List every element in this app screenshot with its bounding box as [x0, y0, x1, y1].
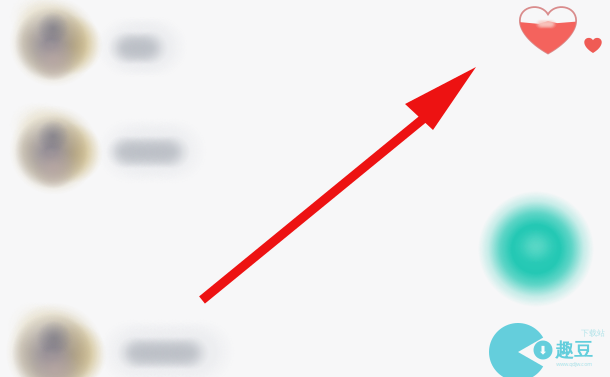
button[interactable]: Like	[584, 37, 602, 53]
staticText: www.qdjw.com	[556, 360, 592, 368]
staticText: 下载站	[581, 328, 605, 338]
staticText: 趣豆	[555, 338, 593, 361]
button[interactable]: Likes	[519, 4, 577, 53]
